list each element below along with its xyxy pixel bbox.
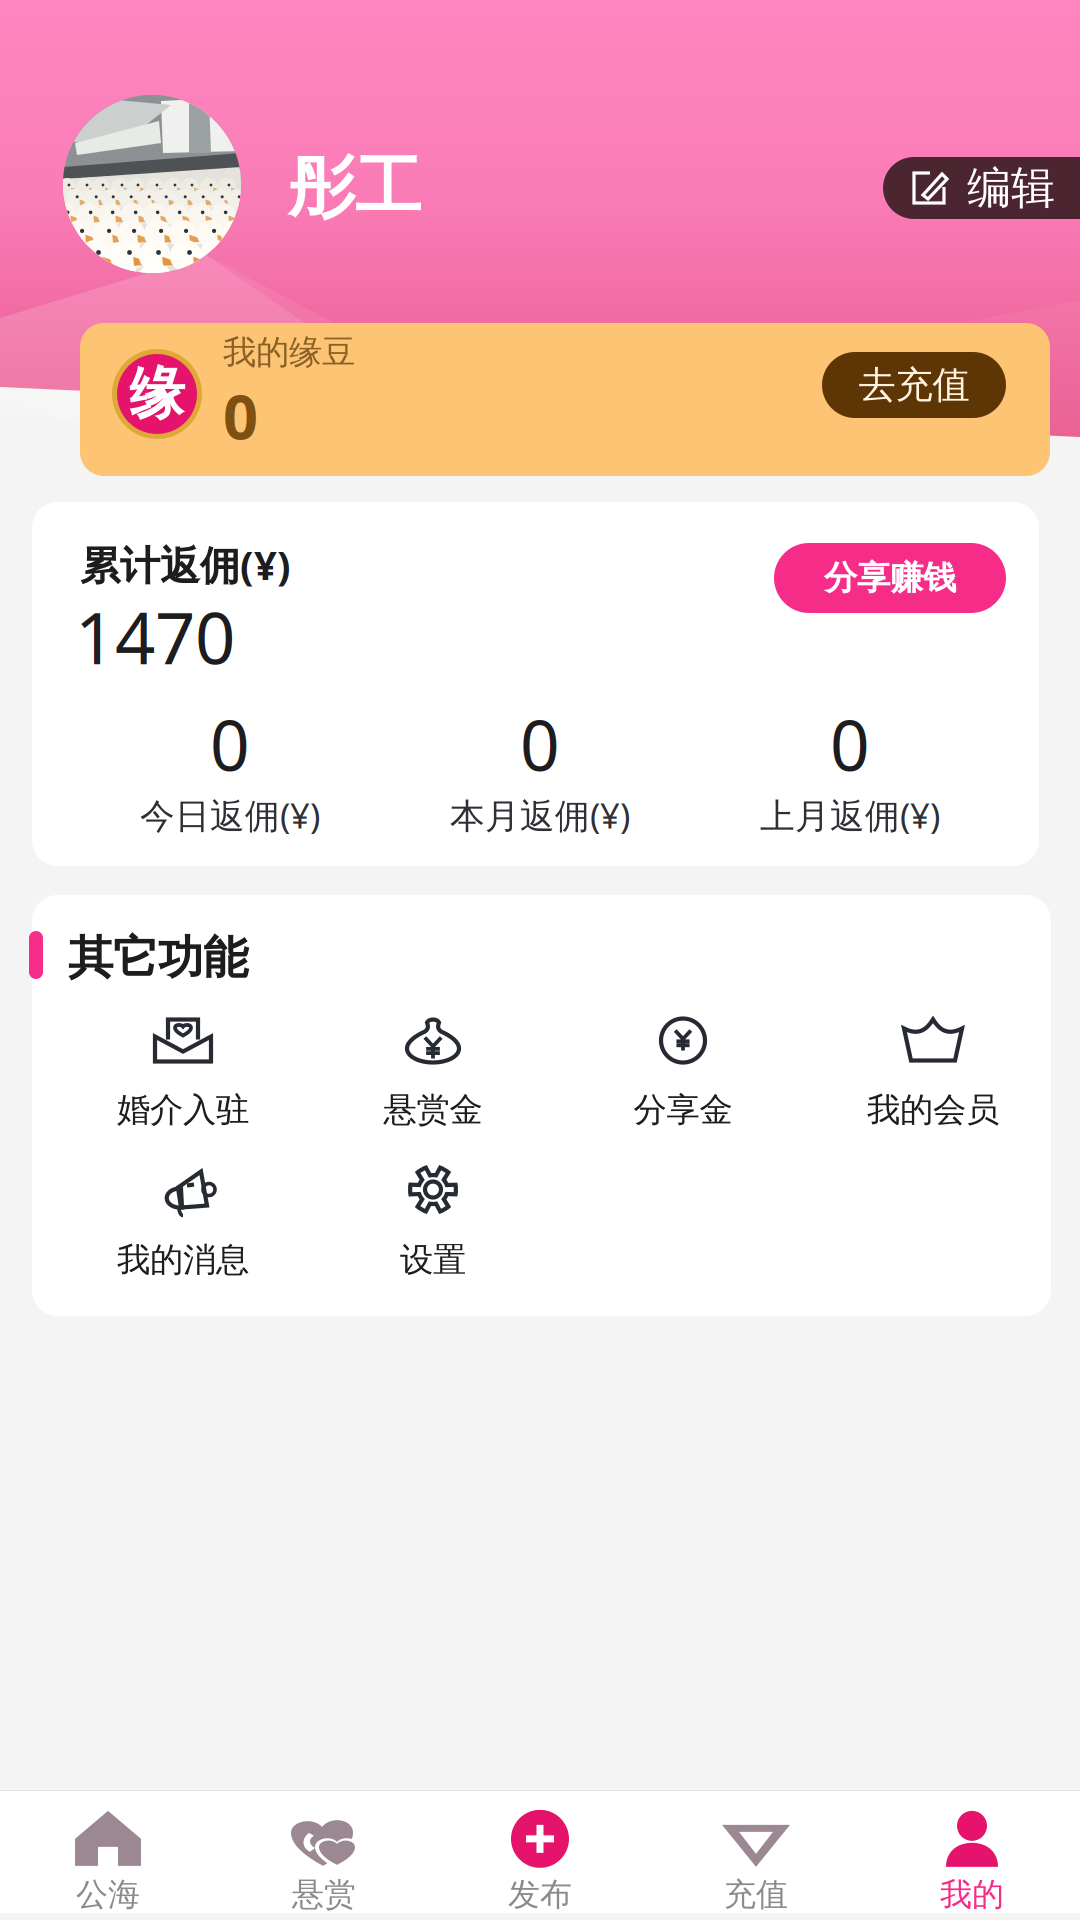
button[interactable]: 设置 <box>308 1148 558 1298</box>
button[interactable]: 公海 <box>0 1805 216 1918</box>
button[interactable]: 去充值 <box>822 352 1006 418</box>
staticText: 1470 <box>75 590 235 684</box>
button[interactable]: 我的消息 <box>58 1148 308 1298</box>
staticText: 编辑 <box>967 161 1055 215</box>
staticText: 婚介入驻 <box>117 1089 249 1130</box>
button[interactable]: 悬赏金 <box>308 998 558 1148</box>
button[interactable]: 编辑 <box>883 157 1080 219</box>
staticText: 去充值 <box>858 362 969 408</box>
staticText: 我的消息 <box>117 1239 249 1280</box>
button[interactable]: 婚介入驻 <box>58 998 308 1148</box>
staticText: 本月返佣(¥) <box>450 792 630 838</box>
staticText: 分享赚钱 <box>824 557 956 598</box>
staticText: 我的会员 <box>867 1089 999 1130</box>
staticText: 分享金 <box>633 1089 732 1130</box>
staticText: 悬赏金 <box>383 1089 482 1130</box>
button[interactable]: 分享赚钱 <box>774 543 1006 613</box>
staticText: 0 <box>223 375 258 456</box>
staticText: 今日返佣(¥) <box>140 792 320 838</box>
staticText: 发布 <box>508 1875 572 1914</box>
staticText: 其它功能 <box>68 930 248 986</box>
staticText: 我的缘豆 <box>223 332 355 373</box>
staticText: 上月返佣(¥) <box>760 792 940 838</box>
button[interactable]: 发布 <box>432 1805 648 1918</box>
staticText: 0 <box>830 698 870 790</box>
button[interactable]: 分享金 <box>558 998 808 1148</box>
button[interactable]: 我的 <box>864 1805 1080 1918</box>
staticText: 悬赏 <box>292 1875 356 1914</box>
button[interactable]: 充值 <box>648 1805 864 1918</box>
button[interactable]: 我的会员 <box>808 998 1058 1148</box>
staticText: 0 <box>520 698 560 790</box>
staticText: 充值 <box>724 1875 788 1914</box>
staticText: 设置 <box>400 1239 466 1280</box>
button[interactable]: 悬赏 <box>216 1805 432 1918</box>
staticText: 公海 <box>76 1875 140 1914</box>
staticText: 累计返佣(¥) <box>80 538 291 591</box>
staticText: 0 <box>210 698 250 790</box>
staticText: 彤工 <box>288 146 422 228</box>
staticText: 缘 <box>129 360 185 428</box>
staticText: 我的 <box>940 1875 1004 1914</box>
button[interactable]: 头像 <box>63 95 241 273</box>
